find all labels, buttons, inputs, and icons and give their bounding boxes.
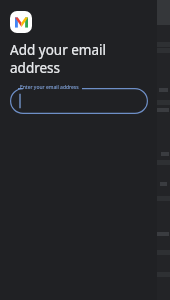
staticText: Add your email address (10, 41, 106, 77)
other: Gmail (10, 11, 32, 33)
staticText: Enter your email address (20, 84, 79, 91)
button[interactable]: Enter your email address (10, 88, 148, 114)
